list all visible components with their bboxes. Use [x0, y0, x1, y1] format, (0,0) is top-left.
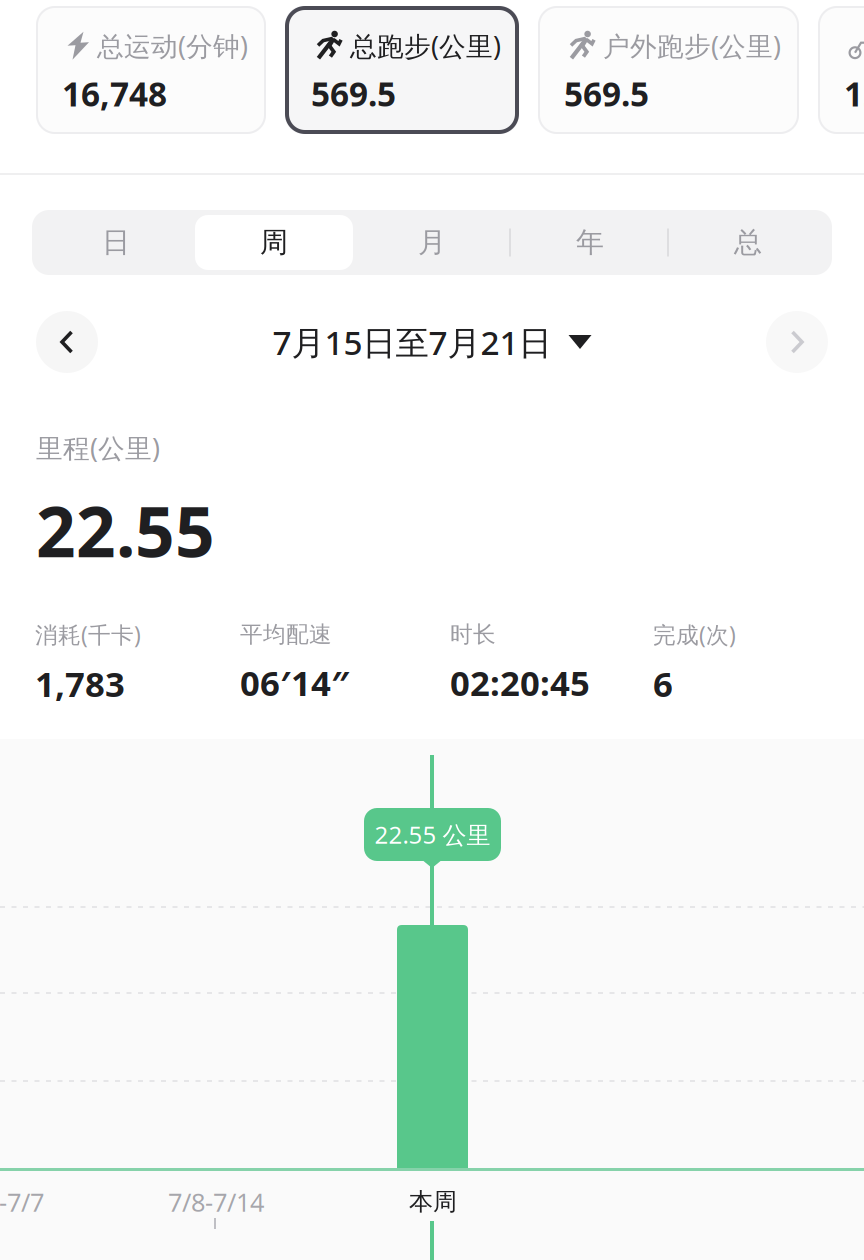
staticText: 22.55: [36, 484, 215, 576]
staticText: 06′14″: [240, 659, 349, 705]
button[interactable]: 日: [37, 215, 195, 270]
staticText: 户外跑步(公里): [603, 28, 781, 63]
staticText: 22.55 公里: [374, 819, 490, 850]
staticText: 平均配速: [240, 621, 332, 648]
button[interactable]: 月: [353, 215, 511, 270]
staticText: 569.5: [311, 71, 396, 116]
staticText: 完成(次): [653, 619, 736, 650]
staticText: 总运动(分钟): [97, 28, 248, 63]
button[interactable]: Next week: [766, 311, 828, 373]
staticText: 本周: [409, 1187, 457, 1217]
staticText: 总: [734, 225, 762, 260]
button[interactable]: 骑行(公里): [818, 6, 864, 134]
staticText: 7月15日至7月21日: [272, 320, 551, 364]
staticText: 16,748: [62, 71, 167, 116]
staticText: 总跑步(公里): [350, 28, 501, 63]
staticText: 7/8-7/14: [168, 1185, 264, 1219]
button[interactable]: 总跑步(公里): [285, 6, 519, 134]
staticText: 569.5: [564, 71, 649, 116]
button[interactable]: 户外跑步(公里): [538, 6, 799, 134]
staticText: 时长: [450, 621, 496, 648]
button[interactable]: 周: [195, 215, 353, 270]
staticText: 1,783: [35, 661, 125, 707]
staticText: 02:20:45: [450, 659, 590, 705]
staticText: 周: [260, 225, 288, 260]
staticText: 里程(公里): [36, 430, 160, 465]
button[interactable]: 总运动(分钟): [36, 6, 266, 134]
button[interactable]: 年: [511, 215, 669, 270]
staticText: -7/7: [0, 1185, 44, 1219]
staticText: 年: [576, 225, 604, 260]
button[interactable]: 7月15日至7月21日: [272, 320, 591, 364]
staticText: 消耗(千卡): [35, 619, 141, 650]
button[interactable]: Previous week: [36, 311, 98, 373]
staticText: 6: [653, 661, 673, 707]
staticText: 月: [418, 225, 446, 260]
button[interactable]: 总: [669, 215, 827, 270]
staticText: 120.6: [844, 71, 864, 116]
staticText: 日: [102, 225, 130, 260]
